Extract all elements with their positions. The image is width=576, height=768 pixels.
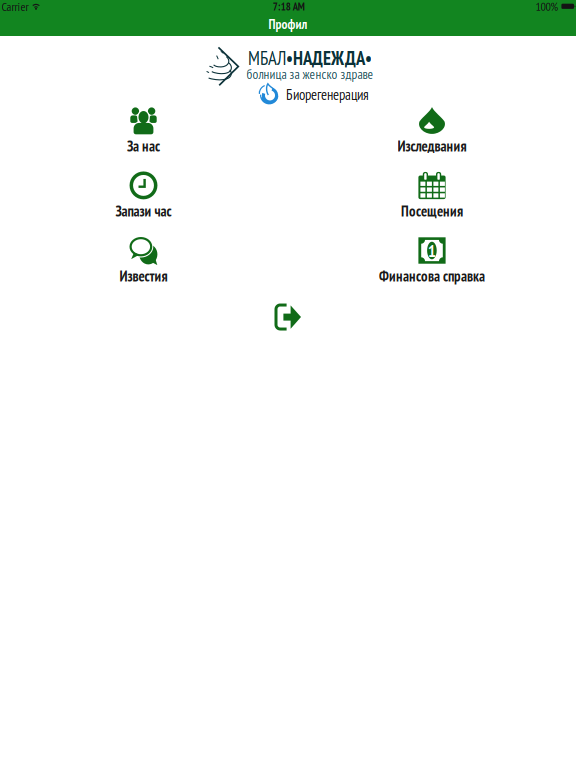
button[interactable]: За нас	[53, 108, 233, 154]
staticText: За нас	[127, 136, 160, 155]
staticText: •НАДЕЖДА•	[286, 46, 372, 70]
button[interactable]: 1	[342, 238, 522, 284]
staticText: Посещения	[401, 201, 463, 220]
staticText: 100%	[535, 0, 558, 14]
button[interactable]: Посещения	[342, 173, 522, 219]
staticText: Изследвания	[397, 136, 466, 155]
staticText: Финансова справка	[379, 266, 485, 285]
staticText: Известия	[119, 266, 167, 285]
button[interactable]: Известия	[53, 238, 233, 284]
button[interactable]: Изход	[265, 294, 311, 340]
staticText: 1	[428, 239, 436, 262]
staticText: Биорегенерация	[286, 85, 369, 104]
button[interactable]: Изследвания	[342, 108, 522, 154]
staticText: Запази час	[115, 201, 171, 220]
staticText: Профил	[268, 15, 307, 33]
staticText: болница за женско здраве	[246, 65, 373, 83]
button[interactable]: Запази час	[53, 173, 233, 219]
staticText: 7:18 AM	[273, 0, 305, 13]
staticText: МБАЛ	[248, 46, 286, 70]
staticText: Carrier	[1, 0, 28, 14]
